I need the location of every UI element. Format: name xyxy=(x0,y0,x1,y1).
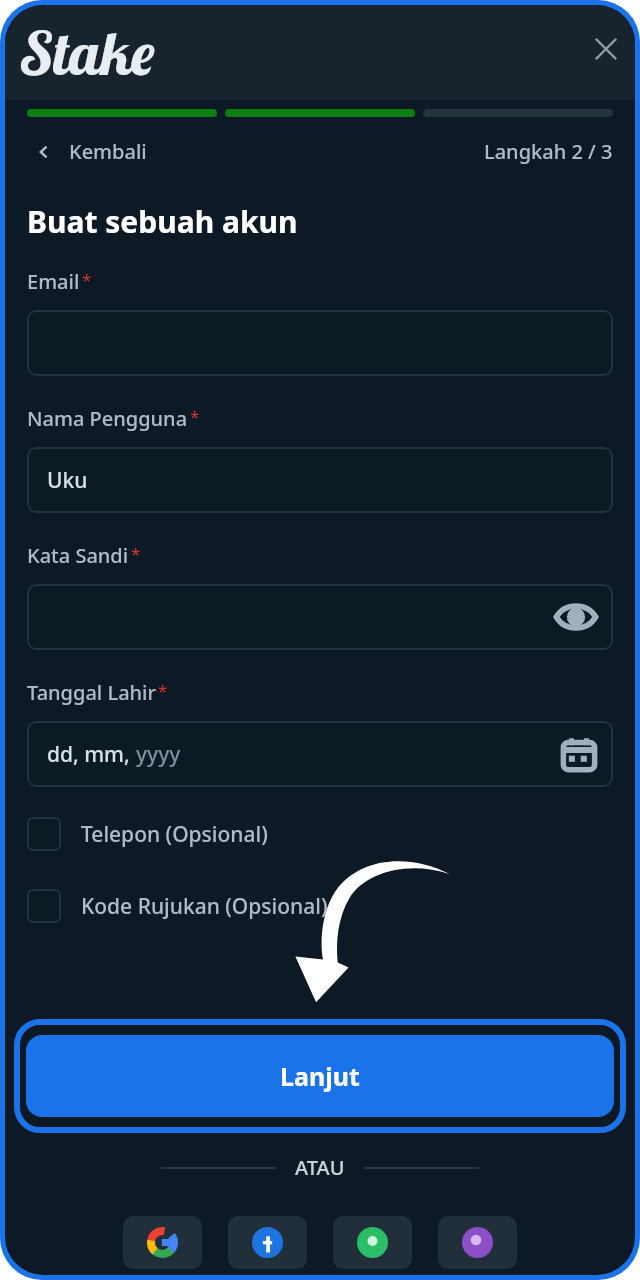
staticText: yyyy xyxy=(136,740,181,769)
staticText: * xyxy=(158,679,168,702)
staticText: * xyxy=(82,268,92,291)
staticText: * xyxy=(190,405,200,428)
staticText: Buat sebuah akun xyxy=(27,201,298,242)
staticText: Kode Rujukan (Opsional) xyxy=(81,892,328,921)
button[interactable]: Sign in with Twitch xyxy=(438,1216,517,1269)
button[interactable]: dd, mm, xyxy=(27,721,613,787)
staticText: Nama Pengguna xyxy=(27,405,188,432)
staticText: ATAU xyxy=(295,1154,345,1181)
button[interactable]: Telepon (Opsional) xyxy=(27,817,268,851)
staticText: Kata Sandi xyxy=(27,542,129,569)
staticText: Tanggal Lahir xyxy=(27,679,156,706)
button[interactable]: Sign in with Line xyxy=(333,1216,412,1269)
staticText: Email xyxy=(27,268,80,295)
button[interactable]: Sign in with Google xyxy=(123,1216,202,1269)
button[interactable]: Show password xyxy=(555,600,597,634)
button[interactable]: Kode Rujukan (Opsional) xyxy=(27,889,328,923)
button[interactable]: Lanjut xyxy=(26,1035,614,1117)
button[interactable]: Kembali xyxy=(27,138,147,165)
button[interactable]: Pick date xyxy=(562,737,596,771)
staticText: Lanjut xyxy=(280,1059,360,1093)
button[interactable]: Close xyxy=(590,33,622,65)
staticText: Uku xyxy=(47,466,88,495)
button[interactable]: Show password xyxy=(27,584,613,650)
staticText: Kembali xyxy=(69,138,147,165)
button[interactable]: Sign in with Facebook xyxy=(228,1216,307,1269)
staticText: Langkah 2 / 3 xyxy=(484,138,613,165)
button[interactable]: Uku xyxy=(27,447,613,513)
staticText: Stake xyxy=(21,15,156,90)
staticText: dd, mm, xyxy=(47,740,136,769)
staticText: * xyxy=(131,542,141,565)
staticText: Telepon (Opsional) xyxy=(81,820,268,849)
button[interactable] xyxy=(27,310,613,376)
